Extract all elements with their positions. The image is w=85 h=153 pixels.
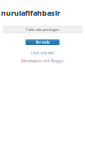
staticText: Tidak ada postingan.: [25, 27, 59, 32]
button[interactable]: Blogger: [51, 59, 63, 63]
staticText: Lihat versi web: [31, 51, 54, 55]
button[interactable]: Beranda: [25, 39, 59, 45]
button[interactable]: Lihat versi web: [0, 50, 85, 56]
staticText: Beranda: [35, 39, 49, 45]
staticText: nurulafifahbasir: [1, 8, 60, 18]
staticText: Diberdayakan oleh: [21, 59, 51, 63]
staticText: Blogger: [51, 59, 63, 63]
staticText: .: [63, 59, 64, 63]
